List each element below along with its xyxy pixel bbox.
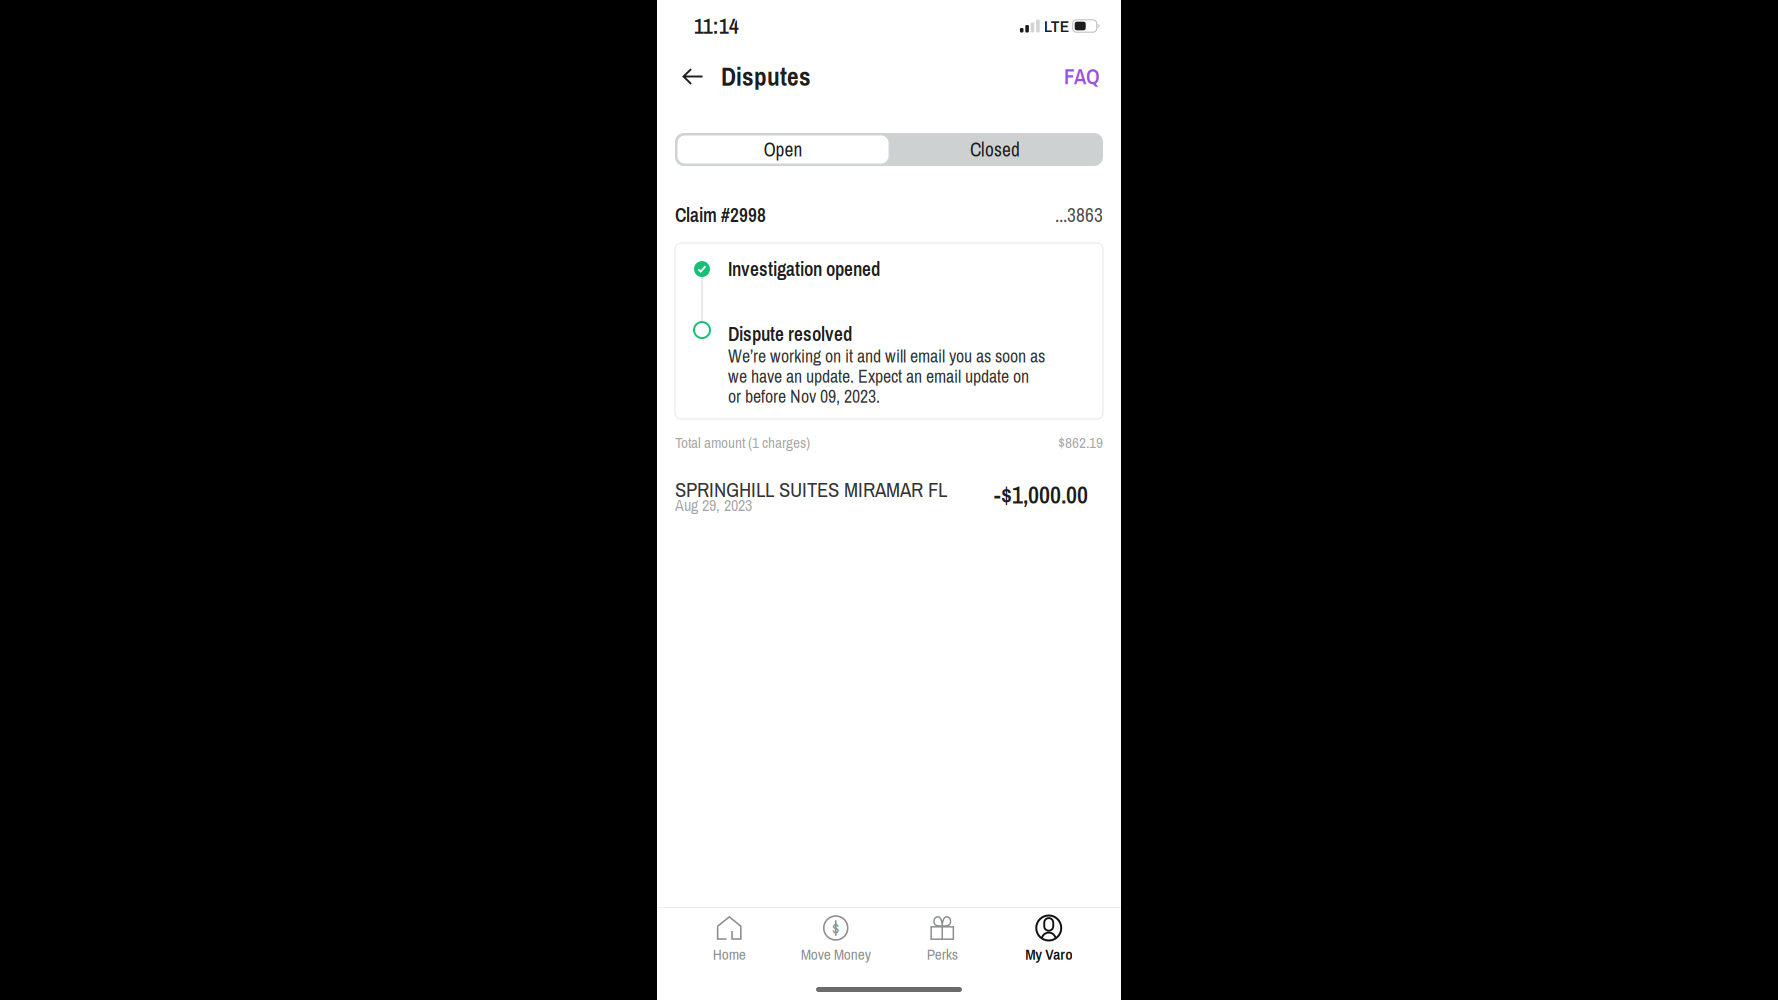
staticText: Home bbox=[713, 944, 746, 965]
button[interactable]: My Varo bbox=[995, 908, 1102, 973]
button[interactable]: Claim #2998 bbox=[657, 202, 1121, 453]
staticText: $ bbox=[832, 916, 840, 940]
staticText: Dispute resolved bbox=[728, 321, 852, 347]
button[interactable]: Disputes bbox=[712, 51, 811, 101]
staticText: ...3863 bbox=[1055, 202, 1103, 228]
staticText: SPRINGHILL SUITES MIRAMAR FL bbox=[675, 476, 947, 503]
staticText: Perks bbox=[927, 944, 958, 965]
staticText: Open bbox=[763, 136, 802, 162]
button[interactable]: FAQ bbox=[1062, 52, 1102, 101]
staticText: Claim #2998 bbox=[675, 202, 766, 228]
button[interactable]: Home bbox=[676, 908, 782, 973]
button[interactable]: Perks bbox=[889, 908, 995, 973]
button[interactable]: Back bbox=[674, 57, 712, 95]
staticText: Disputes bbox=[721, 59, 811, 93]
staticText: Investigation opened bbox=[728, 256, 880, 282]
staticText: My Varo bbox=[1025, 944, 1072, 965]
button[interactable]: $ bbox=[782, 908, 889, 973]
staticText: $862.19 bbox=[1058, 432, 1103, 453]
staticText: 11:14 bbox=[694, 12, 739, 40]
button[interactable]: Closed bbox=[889, 135, 1101, 164]
button[interactable]: Open bbox=[677, 135, 889, 164]
staticText: Move Money bbox=[801, 944, 871, 965]
staticText: Aug 29, 2023 bbox=[675, 494, 752, 516]
staticText: Closed bbox=[970, 136, 1020, 162]
staticText: Total amount (1 charges) bbox=[675, 432, 810, 453]
staticText: FAQ bbox=[1064, 62, 1100, 91]
staticText: -$1,000.00 bbox=[994, 479, 1088, 511]
button[interactable]: SPRINGHILL SUITES MIRAMAR FL bbox=[657, 476, 1121, 516]
staticText: LTE bbox=[1044, 14, 1069, 38]
staticText: We’re working on it and will email you a… bbox=[728, 344, 1045, 408]
